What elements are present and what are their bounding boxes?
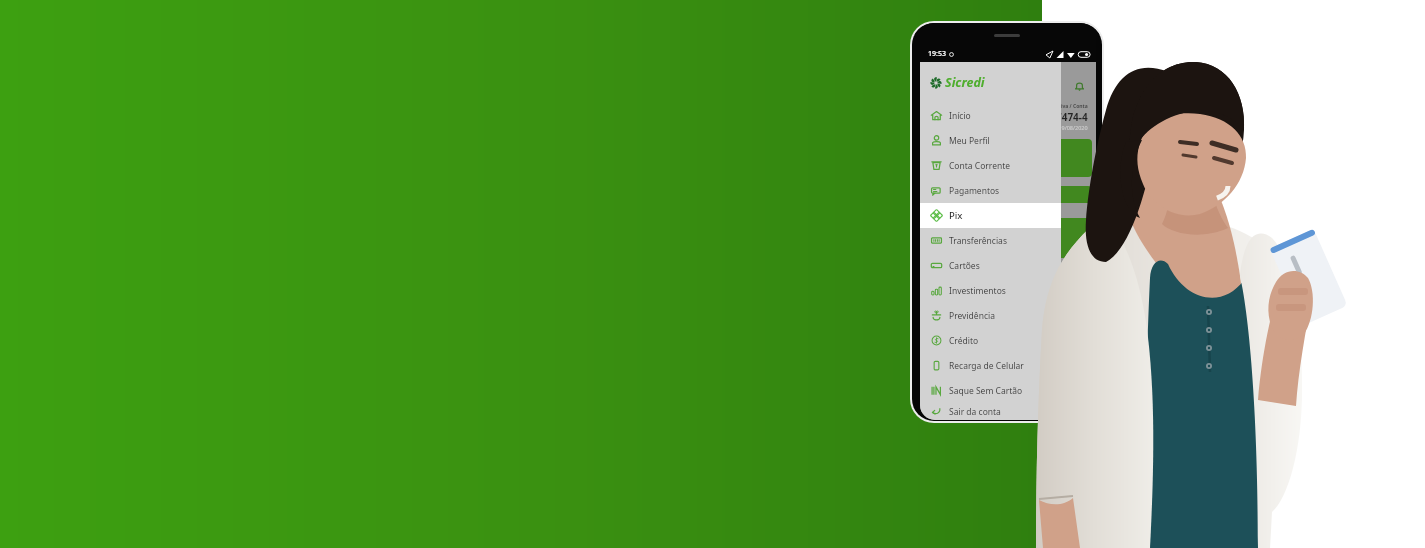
staticText: Sair da conta: [949, 406, 1001, 418]
button[interactable]: Início: [920, 103, 1061, 128]
button[interactable]: Investimentos: [920, 278, 1061, 303]
staticText: Investimentos: [949, 285, 1006, 297]
button[interactable]: Recarga de Celular: [920, 353, 1061, 378]
staticText: Saldo em conta: [935, 143, 983, 152]
staticText: 0101 / 37474-4: [1018, 110, 1088, 124]
button[interactable]: Pagamentos: [920, 178, 1061, 203]
staticText: Conta Corrente: [949, 160, 1011, 172]
button[interactable]: Saldo em conta: [930, 139, 1092, 177]
button[interactable]: Meu Perfil: [920, 128, 1061, 153]
button[interactable]: Crédito: [920, 328, 1061, 353]
button[interactable]: Notificações: [1071, 78, 1087, 94]
staticText: Saque Sem Cartão: [949, 385, 1023, 397]
button[interactable]: Cartões: [920, 253, 1061, 278]
button[interactable]: Previdência: [920, 303, 1061, 328]
staticText: Previdência: [949, 310, 995, 322]
button[interactable]: Sair da conta: [920, 403, 1061, 420]
staticText: Meu Perfil: [949, 135, 990, 147]
staticText: Sicredi: [945, 74, 985, 91]
button[interactable]: Transferências: [920, 228, 1061, 253]
staticText: Pagamentos: [949, 185, 1000, 197]
button[interactable]: Sicredi: [930, 74, 985, 91]
staticText: Cartões: [949, 260, 980, 272]
staticText: Início: [949, 110, 971, 122]
staticText: Crédito: [949, 335, 979, 347]
button[interactable]: Saque Sem Cartão: [920, 378, 1061, 403]
staticText: Transferir / Pagar: [935, 190, 989, 199]
staticText: Pix: [949, 209, 963, 222]
staticText: Ver extratos: [935, 160, 972, 169]
staticText: Transferências: [949, 235, 1007, 247]
button[interactable]: Transferir / Pagar: [930, 186, 1092, 203]
button[interactable]: [930, 218, 1092, 258]
staticText: Recarga de Celular: [949, 360, 1024, 372]
staticText: 19:53: [928, 49, 946, 59]
button[interactable]: Pix: [920, 203, 1061, 228]
button[interactable]: Conta Corrente: [920, 153, 1061, 178]
staticText: Cooperativa / Conta: [1038, 103, 1088, 110]
staticText: Saldo em 19/08/2020: [1033, 124, 1088, 131]
